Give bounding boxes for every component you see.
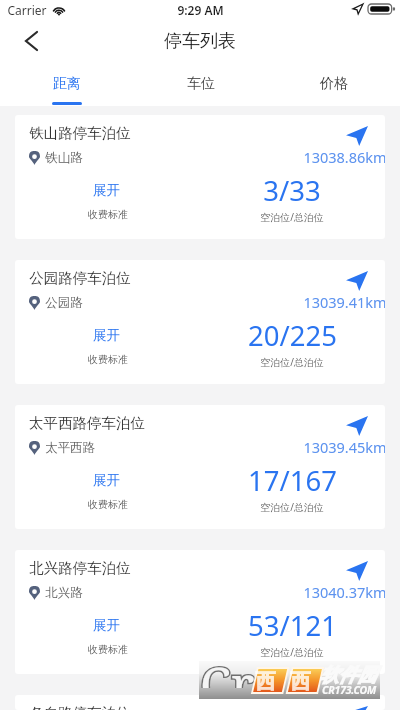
staticText: 铁山路	[45, 150, 83, 166]
staticText: 展开	[93, 617, 120, 634]
staticText: 13039.41km	[303, 292, 385, 312]
staticText: 各自路停车泊位	[29, 704, 131, 710]
staticText: 13039.45km	[303, 437, 385, 457]
staticText: 太平西路	[45, 440, 95, 456]
staticText: 北兴路停车泊位	[29, 559, 131, 577]
staticText: 展开	[93, 182, 120, 199]
staticText: 空泊位/总泊位	[260, 210, 324, 224]
button[interactable]: 价格	[267, 58, 400, 106]
staticText: 西	[291, 669, 311, 694]
staticText: 空泊位/总泊位	[260, 500, 324, 514]
staticText: 停车列表	[164, 30, 236, 53]
staticText: 公园路停车泊位	[29, 269, 131, 287]
staticText: 收费标准	[88, 498, 128, 511]
staticText: 公园路	[45, 295, 83, 311]
staticText: 西	[256, 669, 276, 694]
staticText: 太平西路停车泊位	[29, 414, 145, 432]
staticText: Carrier	[7, 2, 47, 18]
staticText: 铁山路停车泊位	[29, 124, 131, 142]
staticText: 收费标准	[88, 353, 128, 366]
staticText: Cr	[200, 650, 255, 688]
other: 导航	[346, 271, 368, 291]
button[interactable]: 铁山路停车泊位	[15, 115, 385, 239]
staticText: 17/167	[248, 462, 337, 499]
other: 导航	[346, 561, 368, 581]
button[interactable]: 各自路停车泊位	[15, 695, 385, 710]
staticText: 3/33	[263, 172, 321, 209]
button[interactable]: 太平西路停车泊位	[15, 405, 385, 529]
staticText: CR173.COM	[322, 683, 377, 697]
other: 导航	[346, 126, 368, 146]
staticText: 13040.37km	[303, 582, 385, 602]
button[interactable]: 车位	[134, 58, 267, 106]
button[interactable]: 展开	[76, 614, 136, 636]
staticText: 13038.86km	[303, 147, 385, 167]
staticText: 9:29 AM	[177, 2, 224, 18]
staticText: 车位	[187, 75, 215, 93]
staticText: 展开	[93, 327, 120, 344]
staticText: 空泊位/总泊位	[260, 355, 324, 369]
button[interactable]: 展开	[76, 179, 136, 201]
staticText: 价格	[320, 75, 348, 93]
staticText: 软件园	[320, 663, 377, 687]
staticText: 收费标准	[88, 208, 128, 221]
button[interactable]: 展开	[76, 469, 136, 491]
staticText: 展开	[93, 472, 120, 489]
staticText: Cr	[200, 650, 255, 688]
button[interactable]: 北兴路停车泊位	[15, 550, 385, 674]
other: 导航	[346, 416, 368, 436]
staticText: 53/121	[248, 607, 337, 644]
button[interactable]: 公园路停车泊位	[15, 260, 385, 384]
staticText: 距离	[53, 75, 81, 93]
button[interactable]: 返回	[0, 24, 56, 58]
staticText: 北兴路	[45, 585, 83, 601]
staticText: 收费标准	[88, 643, 128, 656]
button[interactable]: 展开	[76, 324, 136, 346]
staticText: 20/225	[248, 317, 337, 354]
button[interactable]: 距离	[0, 58, 134, 106]
other: 导航	[346, 706, 368, 710]
staticText: 空泊位/总泊位	[260, 645, 324, 659]
